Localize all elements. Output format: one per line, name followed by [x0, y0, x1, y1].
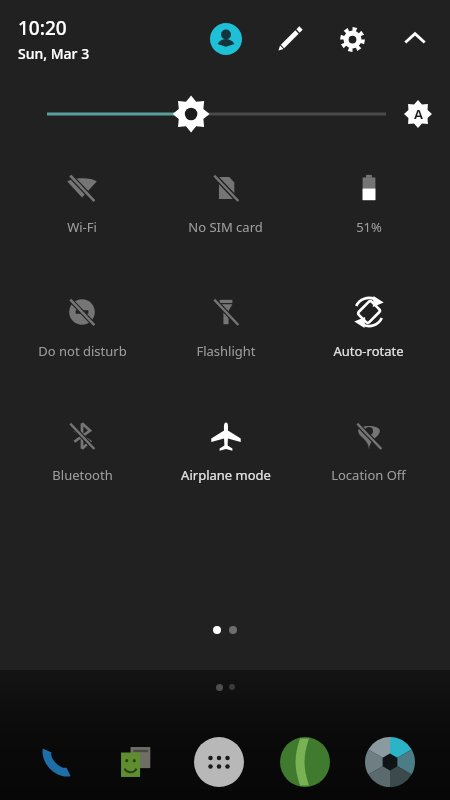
button[interactable] [47, 92, 386, 136]
staticText: Bluetooth [52, 466, 113, 484]
button[interactable]: Bluetooth [10, 416, 154, 488]
button[interactable]: Messaging [113, 739, 159, 785]
staticText: Airplane mode [181, 466, 271, 484]
staticText: No SIM card [188, 218, 263, 236]
button[interactable]: Camera [364, 736, 416, 788]
button[interactable]: Flashlight [154, 292, 297, 364]
button[interactable]: 51% [297, 168, 440, 240]
button[interactable]: No SIM card [154, 168, 297, 240]
button[interactable]: Edit [268, 18, 310, 60]
button[interactable]: Wi-Fi [10, 168, 154, 240]
button[interactable]: Phone [34, 739, 80, 785]
button[interactable]: User account [205, 18, 247, 60]
staticText: 51% [356, 218, 382, 236]
button[interactable]: Auto-rotate [297, 292, 440, 364]
staticText: A [414, 105, 423, 123]
staticText: Wi-Fi [67, 218, 97, 236]
staticText: Location Off [331, 466, 406, 484]
button[interactable]: Location Off [297, 416, 440, 488]
button[interactable]: Settings [331, 18, 373, 60]
button[interactable]: Apps [193, 736, 245, 788]
staticText: Do not disturb [38, 342, 127, 360]
staticText: Auto-rotate [333, 342, 404, 360]
button[interactable]: Do not disturb [10, 292, 154, 364]
button[interactable]: Browser [279, 736, 331, 788]
staticText: Sun, Mar 3 [18, 44, 90, 63]
staticText: 10:20 [18, 15, 67, 41]
button[interactable]: Airplane mode [154, 416, 297, 488]
button[interactable]: Collapse [394, 18, 436, 60]
staticText: Flashlight [196, 342, 256, 360]
button[interactable]: Auto brightness [398, 94, 438, 134]
